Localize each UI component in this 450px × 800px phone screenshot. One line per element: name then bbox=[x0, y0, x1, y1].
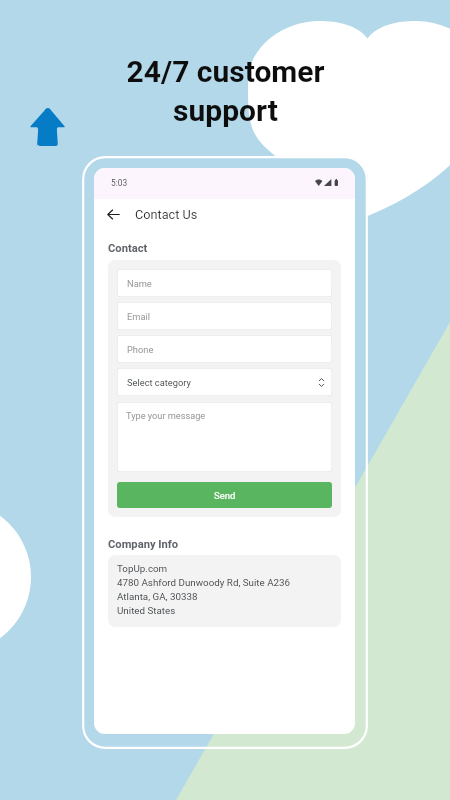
staticText: Contact bbox=[108, 242, 148, 255]
staticText: Company Info bbox=[108, 538, 179, 551]
button[interactable]: Email bbox=[117, 302, 332, 330]
button[interactable]: Back bbox=[107, 208, 120, 221]
staticText: 5:03 bbox=[111, 178, 128, 188]
staticText: support bbox=[173, 93, 278, 128]
other: Scroll up bbox=[30, 108, 65, 146]
button[interactable]: Send bbox=[117, 482, 332, 508]
staticText: Email bbox=[127, 311, 151, 322]
button[interactable]: Select category bbox=[117, 368, 332, 396]
staticText: TopUp.com 4780 Ashford Dunwoody Rd, Suit… bbox=[117, 563, 291, 616]
staticText: Name bbox=[127, 278, 152, 289]
staticText: Send bbox=[214, 490, 236, 501]
button[interactable]: Phone bbox=[117, 335, 332, 363]
staticText: Phone bbox=[127, 344, 154, 355]
button[interactable]: Name bbox=[117, 269, 332, 297]
staticText: Contact Us bbox=[135, 207, 198, 222]
staticText: Type your message bbox=[126, 410, 206, 421]
staticText: 24/7 customer bbox=[126, 54, 325, 89]
button[interactable]: Type your message bbox=[117, 402, 332, 472]
staticText: Select category bbox=[127, 377, 191, 388]
